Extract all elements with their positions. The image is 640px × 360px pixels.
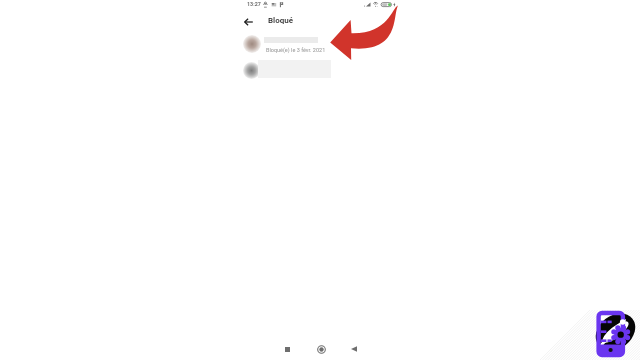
staticText: Bloqué(e) le 3 févr. 2021 bbox=[266, 47, 326, 53]
button[interactable]: Back bbox=[346, 341, 362, 357]
button[interactable]: Bloqué bbox=[268, 16, 294, 25]
button[interactable]: Home bbox=[313, 341, 329, 357]
staticText: Bloqué bbox=[268, 16, 294, 25]
button[interactable]: Recents bbox=[279, 341, 295, 357]
button[interactable] bbox=[238, 58, 330, 82]
button[interactable]: Bloqué(e) le 3 févr. 2021 bbox=[238, 31, 330, 58]
button[interactable]: Back bbox=[241, 14, 256, 29]
button[interactable]: Logo bbox=[590, 308, 640, 360]
staticText: 13:27 bbox=[247, 1, 261, 7]
